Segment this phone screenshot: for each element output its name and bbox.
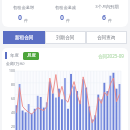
staticText: 80 [11, 82, 15, 87]
button[interactable]: 到期合同 [45, 31, 86, 44]
staticText: 新租合同 [15, 35, 34, 41]
staticText: 20 [11, 124, 15, 129]
staticText: 6 [102, 13, 107, 23]
staticText: 金额(万元) [6, 61, 25, 66]
button[interactable]: 新租合同 [3, 31, 45, 44]
staticText: 到期合同 [56, 35, 75, 41]
button[interactable]: 3个月内到期 [86, 0, 128, 27]
button[interactable]: 有租金递增 [2, 0, 44, 27]
staticText: 0 [60, 13, 65, 23]
staticText: 件 [24, 18, 28, 23]
staticText: 100 [9, 68, 15, 73]
button[interactable]: 月度 [23, 52, 39, 60]
staticText: 有租金递减 [55, 5, 76, 10]
staticText: 件 [108, 18, 112, 23]
staticText: 合同2025-09 [98, 53, 124, 59]
staticText: 合同查询 [97, 35, 116, 41]
staticText: 60 [11, 96, 15, 101]
button[interactable]: 合同查询 [86, 31, 127, 44]
staticText: 件 [66, 18, 70, 23]
staticText: 月度 [27, 53, 36, 59]
staticText: 年度 [10, 53, 19, 59]
staticText: 0 [18, 13, 23, 23]
staticText: 有租金递增 [13, 5, 34, 10]
button[interactable]: 有租金递减 [44, 0, 86, 27]
staticText: 40 [11, 110, 15, 115]
staticText: 3个月内到期 [95, 4, 119, 10]
